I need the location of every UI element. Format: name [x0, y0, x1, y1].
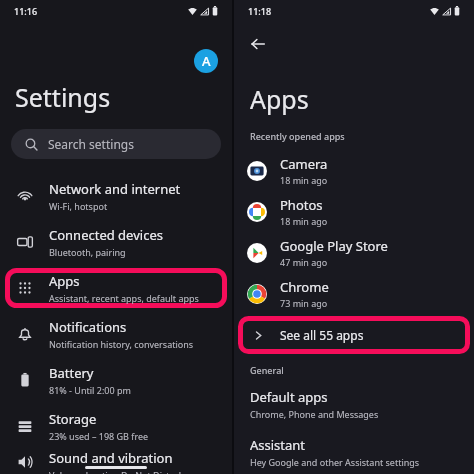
staticText: Notification history, conversations: [49, 338, 194, 350]
button[interactable]: Default apps: [234, 386, 474, 422]
staticText: Wi-Fi, hotspot: [49, 200, 108, 212]
button[interactable]: Google Play Store: [234, 232, 474, 273]
button[interactable]: Account: [194, 49, 218, 73]
staticText: 18 min ago: [280, 215, 328, 227]
button[interactable]: Apps: [0, 265, 232, 311]
button[interactable]: Camera: [234, 150, 474, 191]
staticText: 11:16: [14, 5, 38, 17]
staticText: Camera: [280, 155, 328, 173]
button[interactable]: Search settings: [11, 129, 221, 159]
staticText: 11:18: [248, 5, 272, 17]
staticText: Settings: [15, 80, 111, 114]
staticText: General: [250, 364, 284, 376]
button[interactable]: See all 55 apps: [234, 314, 474, 356]
staticText: Bluetooth, pairing: [49, 246, 126, 258]
button[interactable]: Storage: [0, 403, 232, 449]
staticText: 47 min ago: [280, 256, 328, 268]
button[interactable]: Battery: [0, 357, 232, 403]
staticText: See all 55 apps: [280, 327, 364, 343]
staticText: Chrome: [280, 278, 329, 296]
staticText: Assistant, recent apps, default apps: [49, 292, 199, 304]
staticText: Sound and vibration: [49, 449, 173, 467]
staticText: Storage: [49, 410, 97, 428]
staticText: Recently opened apps: [250, 130, 345, 142]
staticText: 73 min ago: [280, 297, 328, 309]
staticText: Battery: [49, 364, 94, 382]
button[interactable]: Notifications: [0, 311, 232, 357]
staticText: Google Play Store: [280, 237, 388, 255]
staticText: Default apps: [250, 388, 328, 406]
staticText: Connected devices: [49, 226, 163, 244]
staticText: Hey Google and other Assistant settings: [250, 456, 420, 468]
button[interactable]: Sound and vibration: [0, 449, 232, 474]
staticText: Photos: [280, 196, 323, 214]
button[interactable]: Connected devices: [0, 219, 232, 265]
staticText: A: [202, 52, 211, 70]
button[interactable]: Back: [244, 30, 272, 58]
staticText: Notifications: [49, 318, 127, 336]
button[interactable]: Chrome: [234, 273, 474, 314]
button[interactable]: Assistant: [234, 434, 474, 470]
staticText: 81% - Until 2:00 pm: [49, 384, 131, 396]
button[interactable]: Network and internet: [0, 173, 232, 219]
button[interactable]: Photos: [234, 191, 474, 232]
staticText: Search settings: [48, 136, 134, 152]
staticText: 23% used – 198 GB free: [49, 430, 149, 442]
staticText: Apps: [250, 82, 309, 116]
staticText: 18 min ago: [280, 174, 328, 186]
staticText: Network and internet: [49, 180, 181, 198]
staticText: Volume, haptics, Do Not Disturb: [49, 469, 185, 474]
staticText: Apps: [49, 272, 80, 290]
staticText: Chrome, Phone and Messages: [250, 408, 379, 420]
staticText: Assistant: [250, 436, 306, 454]
